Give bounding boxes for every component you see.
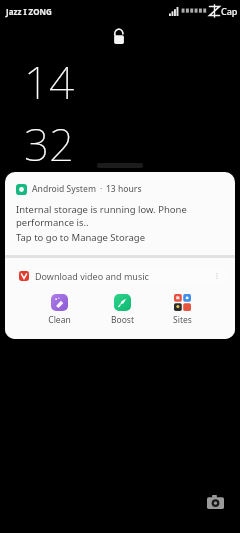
staticText: 32 [24, 114, 75, 174]
button[interactable]: Clean [40, 293, 79, 327]
staticText: Download video and music [35, 270, 213, 282]
button[interactable]: Boost [103, 293, 142, 327]
staticText: 13 hours [106, 183, 142, 195]
staticText: Tap to go to Manage Storage [16, 231, 145, 244]
button[interactable]: Sites [165, 293, 200, 327]
staticText: Clean [48, 314, 71, 326]
staticText: Cap [221, 5, 238, 17]
staticText: Boost [111, 314, 134, 326]
button[interactable]: Camera [202, 489, 228, 515]
staticText: Internal storage is running low. Phone p… [16, 203, 224, 229]
staticText: Sun, 18 Aug [26, 180, 84, 194]
staticText: · [100, 183, 103, 195]
staticText: Sites [173, 314, 192, 326]
staticText: 14 [24, 52, 75, 112]
other: Unlocked [113, 27, 127, 45]
staticText: Jazz I ZONG [6, 6, 52, 17]
staticText: Android System [32, 183, 97, 195]
button[interactable]: Android System [5, 172, 235, 255]
button[interactable]: Download video and music [14, 266, 226, 286]
